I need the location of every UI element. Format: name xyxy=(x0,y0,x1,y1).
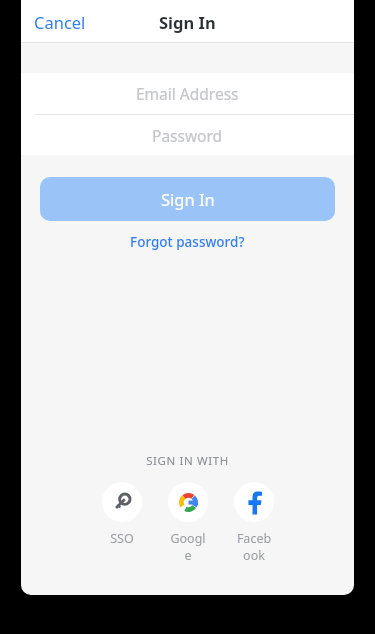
staticText: Google xyxy=(168,530,208,564)
button[interactable]: Forgot password? xyxy=(122,229,253,255)
button[interactable]: Password xyxy=(21,115,354,155)
staticText: SSO xyxy=(102,530,142,547)
button[interactable]: Email Address xyxy=(21,73,354,114)
staticText: Facebook xyxy=(234,530,274,564)
staticText: Sign In xyxy=(161,188,215,210)
button[interactable]: Sign In xyxy=(40,177,335,221)
staticText: Email Address xyxy=(136,83,239,104)
staticText: Forgot password? xyxy=(130,233,245,251)
button[interactable]: Sign in with SSO xyxy=(102,482,142,547)
button[interactable]: Sign in with Facebook xyxy=(234,482,274,564)
button[interactable]: Cancel xyxy=(26,5,94,39)
button[interactable]: Sign in with Google xyxy=(168,482,208,564)
staticText: Sign In xyxy=(159,11,216,33)
staticText: Password xyxy=(152,125,223,146)
staticText: Cancel xyxy=(34,11,86,33)
staticText: SIGN IN WITH xyxy=(21,453,354,469)
